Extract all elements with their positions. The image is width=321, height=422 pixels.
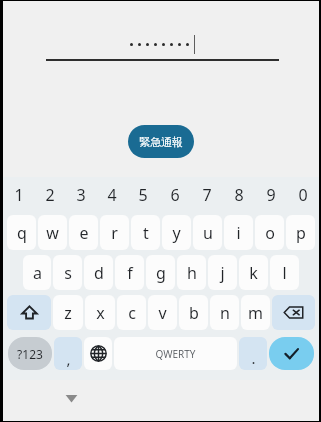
button[interactable]: 7 bbox=[191, 177, 223, 212]
staticText: e bbox=[79, 222, 89, 244]
button[interactable]: v bbox=[148, 295, 177, 330]
staticText: o bbox=[265, 222, 275, 244]
button[interactable]: y bbox=[162, 215, 191, 250]
staticText: 9 bbox=[266, 184, 276, 206]
staticText: h bbox=[187, 262, 197, 284]
staticText: 5 bbox=[138, 184, 148, 206]
staticText: l bbox=[282, 262, 287, 284]
button[interactable]: . bbox=[239, 337, 267, 370]
button[interactable]: p bbox=[286, 215, 315, 250]
button[interactable]: 緊急通報 bbox=[128, 125, 194, 158]
staticText: u bbox=[203, 222, 213, 244]
staticText: 7 bbox=[202, 184, 212, 206]
button[interactable]: w bbox=[38, 215, 67, 250]
button[interactable]: 2 bbox=[34, 177, 65, 212]
button[interactable]: Hide keyboard bbox=[60, 387, 82, 409]
button[interactable]: 8 bbox=[223, 177, 255, 212]
staticText: QWERTY bbox=[155, 347, 196, 361]
button[interactable]: 4 bbox=[96, 177, 127, 212]
button[interactable] bbox=[46, 34, 279, 61]
button[interactable]: o bbox=[255, 215, 284, 250]
staticText: 8 bbox=[234, 184, 244, 206]
staticText: i bbox=[236, 222, 241, 244]
button[interactable]: j bbox=[208, 255, 237, 290]
button[interactable]: i bbox=[224, 215, 253, 250]
staticText: n bbox=[220, 302, 230, 324]
button[interactable]: u bbox=[193, 215, 222, 250]
button[interactable]: Change keyboard bbox=[84, 337, 112, 370]
button[interactable]: h bbox=[177, 255, 206, 290]
staticText: f bbox=[127, 262, 133, 284]
staticText: y bbox=[172, 222, 181, 244]
button[interactable]: d bbox=[84, 255, 113, 290]
staticText: j bbox=[220, 262, 225, 284]
button[interactable]: Shift bbox=[7, 295, 51, 330]
staticText: 3 bbox=[76, 184, 86, 206]
button[interactable]: 1 bbox=[3, 177, 34, 212]
button[interactable]: 3 bbox=[65, 177, 96, 212]
staticText: v bbox=[158, 302, 167, 324]
staticText: z bbox=[64, 302, 72, 324]
button[interactable]: r bbox=[100, 215, 129, 250]
staticText: c bbox=[128, 302, 136, 324]
button[interactable]: s bbox=[53, 255, 82, 290]
button[interactable]: m bbox=[241, 295, 270, 330]
staticText: 6 bbox=[170, 184, 180, 206]
staticText: r bbox=[111, 222, 118, 244]
staticText: p bbox=[296, 222, 306, 244]
staticText: 緊急通報 bbox=[139, 135, 183, 149]
button[interactable]: c bbox=[117, 295, 146, 330]
button[interactable]: 9 bbox=[255, 177, 287, 212]
button[interactable]: e bbox=[69, 215, 98, 250]
button[interactable]: ?123 bbox=[8, 337, 52, 370]
staticText: 4 bbox=[107, 184, 117, 206]
button[interactable]: z bbox=[53, 295, 83, 330]
button[interactable]: k bbox=[239, 255, 268, 290]
staticText: s bbox=[64, 262, 72, 284]
button[interactable]: g bbox=[146, 255, 175, 290]
button[interactable]: QWERTY bbox=[114, 337, 237, 370]
staticText: b bbox=[189, 302, 199, 324]
button[interactable]: a bbox=[23, 255, 51, 290]
staticText: a bbox=[33, 262, 42, 284]
button[interactable]: q bbox=[7, 215, 36, 250]
button[interactable]: 5 bbox=[127, 177, 159, 212]
staticText: ?123 bbox=[17, 346, 43, 362]
staticText: x bbox=[96, 302, 105, 324]
button[interactable]: 0 bbox=[287, 177, 319, 212]
staticText: 0 bbox=[298, 184, 308, 206]
staticText: g bbox=[156, 262, 166, 284]
staticText: m bbox=[248, 302, 263, 324]
button[interactable]: b bbox=[179, 295, 208, 330]
staticText: t bbox=[143, 222, 149, 244]
staticText: , bbox=[66, 349, 71, 369]
button[interactable]: , bbox=[54, 337, 82, 370]
staticText: 2 bbox=[45, 184, 55, 206]
button[interactable]: Backspace bbox=[272, 295, 315, 330]
button[interactable]: f bbox=[115, 255, 144, 290]
button[interactable]: Enter bbox=[269, 337, 314, 370]
staticText: w bbox=[46, 222, 59, 244]
staticText: q bbox=[17, 222, 27, 244]
staticText: 1 bbox=[14, 184, 24, 206]
staticText: . bbox=[251, 348, 256, 368]
button[interactable]: n bbox=[210, 295, 239, 330]
button[interactable]: x bbox=[85, 295, 115, 330]
button[interactable]: l bbox=[270, 255, 299, 290]
button[interactable]: 6 bbox=[159, 177, 191, 212]
button[interactable]: t bbox=[131, 215, 160, 250]
staticText: d bbox=[94, 262, 104, 284]
staticText: k bbox=[249, 262, 258, 284]
